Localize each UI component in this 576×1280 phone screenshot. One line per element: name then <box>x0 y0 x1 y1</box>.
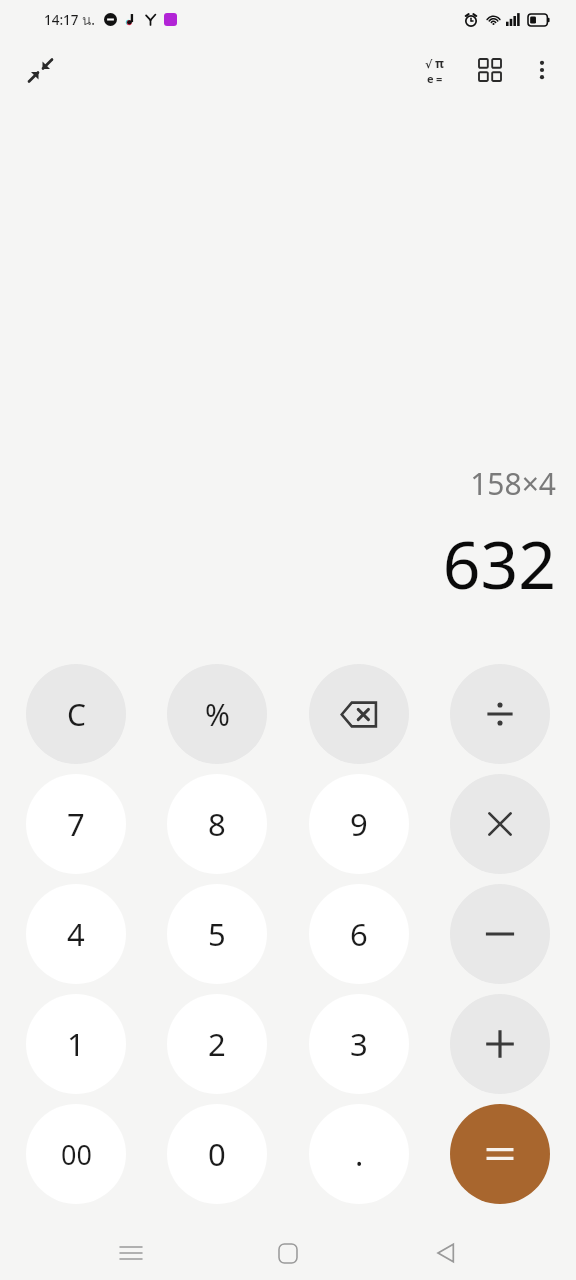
button[interactable]: 00 <box>26 1104 126 1204</box>
button[interactable]: 7 <box>26 774 126 874</box>
button[interactable]: Recent apps <box>105 1227 157 1279</box>
staticText: 5 <box>208 913 226 955</box>
button[interactable]: Home <box>262 1227 314 1279</box>
button[interactable]: 3 <box>309 994 409 1094</box>
button[interactable]: Equals <box>450 1104 550 1204</box>
staticText: 158×4 <box>470 463 556 504</box>
staticText: 632 <box>442 518 556 608</box>
button[interactable]: 9 <box>309 774 409 874</box>
button[interactable]: % <box>167 664 267 764</box>
button[interactable]: Divide <box>450 664 550 764</box>
button[interactable]: 2 <box>167 994 267 1094</box>
staticText: 6 <box>350 913 368 955</box>
staticText: 1 <box>67 1023 85 1065</box>
button[interactable]: Backspace <box>309 664 409 764</box>
staticText: 9 <box>350 803 368 845</box>
staticText: % <box>205 694 230 735</box>
button[interactable]: 8 <box>167 774 267 874</box>
staticText: 14:17 น. <box>44 9 95 30</box>
button[interactable]: C <box>26 664 126 764</box>
staticText: . <box>355 1133 364 1175</box>
button[interactable]: 4 <box>26 884 126 984</box>
button[interactable]: Multiply <box>450 774 550 874</box>
staticText: √ <box>425 58 433 71</box>
button[interactable]: Subtract <box>450 884 550 984</box>
button[interactable]: 6 <box>309 884 409 984</box>
staticText: 7 <box>67 803 85 845</box>
button[interactable]: Back <box>419 1227 471 1279</box>
button[interactable]: Add <box>450 994 550 1094</box>
staticText: 2 <box>208 1023 226 1065</box>
button[interactable]: 5 <box>167 884 267 984</box>
button[interactable]: More options <box>518 46 566 94</box>
button[interactable]: Scientific <box>410 46 458 94</box>
button[interactable]: Collapse <box>16 46 64 94</box>
staticText: 8 <box>208 803 226 845</box>
staticText: e <box>427 71 434 86</box>
staticText: 0 <box>208 1133 226 1175</box>
button[interactable]: 0 <box>167 1104 267 1204</box>
staticText: π <box>435 55 444 71</box>
staticText: 00 <box>61 1136 92 1173</box>
button[interactable]: History <box>466 46 514 94</box>
staticText: C <box>67 694 86 735</box>
staticText: = <box>436 71 443 86</box>
staticText: 4 <box>67 913 85 955</box>
button[interactable]: 1 <box>26 994 126 1094</box>
staticText: 3 <box>350 1023 368 1065</box>
button[interactable]: . <box>309 1104 409 1204</box>
